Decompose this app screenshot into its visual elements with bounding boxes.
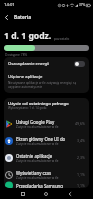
staticText: Zużycie na akumulatorze w tle [16, 176, 59, 180]
staticText: 1 d. 1 godz. [4, 30, 52, 42]
staticText: Nieużywane aplikacje w tle zużywają ener… [8, 81, 77, 85]
staticText: Zużycie na akumulatorze w tle [16, 125, 59, 129]
staticText: Zużycie na akumulatorze w tle [16, 159, 59, 163]
staticText: pozostało [54, 36, 70, 41]
button[interactable]: Ekran główny One UI do zegarka [4, 132, 89, 149]
staticText: Przeglądarka Samsung [16, 183, 63, 188]
staticText: Dostępne 78% [5, 52, 28, 56]
button[interactable]: Back [58, 189, 82, 199]
button[interactable]: Usługi Google Play [4, 115, 89, 132]
staticText: Ostatnie aplikacje [16, 153, 53, 159]
staticText: Wyświetlany czas [16, 170, 52, 176]
button[interactable]: Przeglądarka Samsung [4, 183, 89, 188]
button[interactable]: Wyświetlany czas [4, 166, 89, 183]
button[interactable]: Ostatnie aplikacje [4, 149, 89, 166]
staticText: Oszczędzanie energii [8, 61, 50, 67]
button[interactable]: Back [1, 10, 12, 25]
staticText: Uśpione aplikacje [8, 74, 43, 80]
staticText: 2,3% [77, 155, 85, 160]
staticText: 3,4% [77, 138, 85, 143]
staticText: 37% [79, 3, 85, 7]
staticText: Wykorzystano: 1 d. 14 godz. [8, 106, 48, 110]
staticText: usypiane automatycznie [8, 85, 43, 89]
staticText: 1,1% [77, 172, 85, 177]
staticText: 14:01 [4, 2, 15, 8]
staticText: Bateria [14, 14, 31, 21]
staticText: Usługi Google Play [16, 119, 55, 125]
button[interactable]: Recents [11, 189, 34, 199]
staticText: Ekran główny One UI do zegarka [16, 136, 76, 142]
staticText: Użycie od ostatniego pełnego naładowania [8, 100, 85, 106]
button[interactable]: Oszczędzanie energii [4, 57, 89, 71]
button[interactable]: Uśpione aplikacje [4, 71, 89, 93]
button[interactable]: Home [34, 189, 58, 199]
staticText: 49,6% [75, 121, 85, 126]
staticText: Zużycie na akumulatorze w tle [16, 142, 59, 146]
staticText: 1,1% [77, 183, 85, 188]
